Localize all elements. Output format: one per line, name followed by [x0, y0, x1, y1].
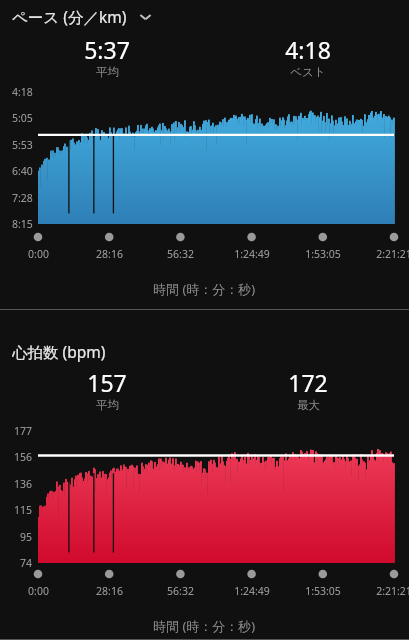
staticText: 5:37 — [84, 34, 130, 65]
staticText: ペース (分／km) — [12, 6, 127, 27]
staticText: 1:24:49 — [234, 584, 270, 598]
other: Change metric — [138, 9, 153, 24]
staticText: 時間 (時：分：秒) — [153, 280, 256, 298]
staticText: 136 — [14, 477, 33, 491]
staticText: 時間 (時：分：秒) — [153, 617, 256, 635]
staticText: 28:16 — [96, 247, 123, 261]
staticText: 115 — [14, 503, 33, 517]
staticText: ベスト — [290, 65, 326, 79]
staticText: 6:40 — [12, 164, 33, 178]
staticText: 5:05 — [12, 111, 33, 125]
staticText: 平均 — [96, 398, 119, 412]
staticText: 0:00 — [28, 247, 49, 261]
staticText: 28:16 — [96, 584, 123, 598]
staticText: 平均 — [96, 65, 119, 79]
staticText: 4:18 — [285, 34, 331, 65]
staticText: 74 — [20, 556, 33, 570]
staticText: 156 — [14, 450, 33, 464]
staticText: 1:53:05 — [305, 247, 341, 261]
staticText: 177 — [14, 424, 33, 438]
button[interactable]: 心拍数 (bpm) — [12, 339, 114, 364]
staticText: 5:53 — [12, 138, 33, 152]
staticText: 56:32 — [167, 247, 194, 261]
staticText: 7:28 — [12, 191, 33, 205]
staticText: 最大 — [297, 398, 320, 412]
staticText: 95 — [20, 530, 33, 544]
staticText: 172 — [288, 367, 328, 398]
staticText: 56:32 — [167, 584, 194, 598]
staticText: 2:21:21 — [376, 247, 409, 261]
staticText: 4:18 — [12, 85, 33, 99]
staticText: 2:21:21 — [376, 584, 409, 598]
staticText: 8:15 — [12, 217, 33, 231]
staticText: 1:53:05 — [305, 584, 341, 598]
staticText: 0:00 — [28, 584, 49, 598]
staticText: 1:24:49 — [234, 247, 270, 261]
staticText: 157 — [87, 367, 127, 398]
button[interactable]: ペース (分／km) — [12, 4, 161, 29]
staticText: 心拍数 (bpm) — [12, 341, 106, 362]
